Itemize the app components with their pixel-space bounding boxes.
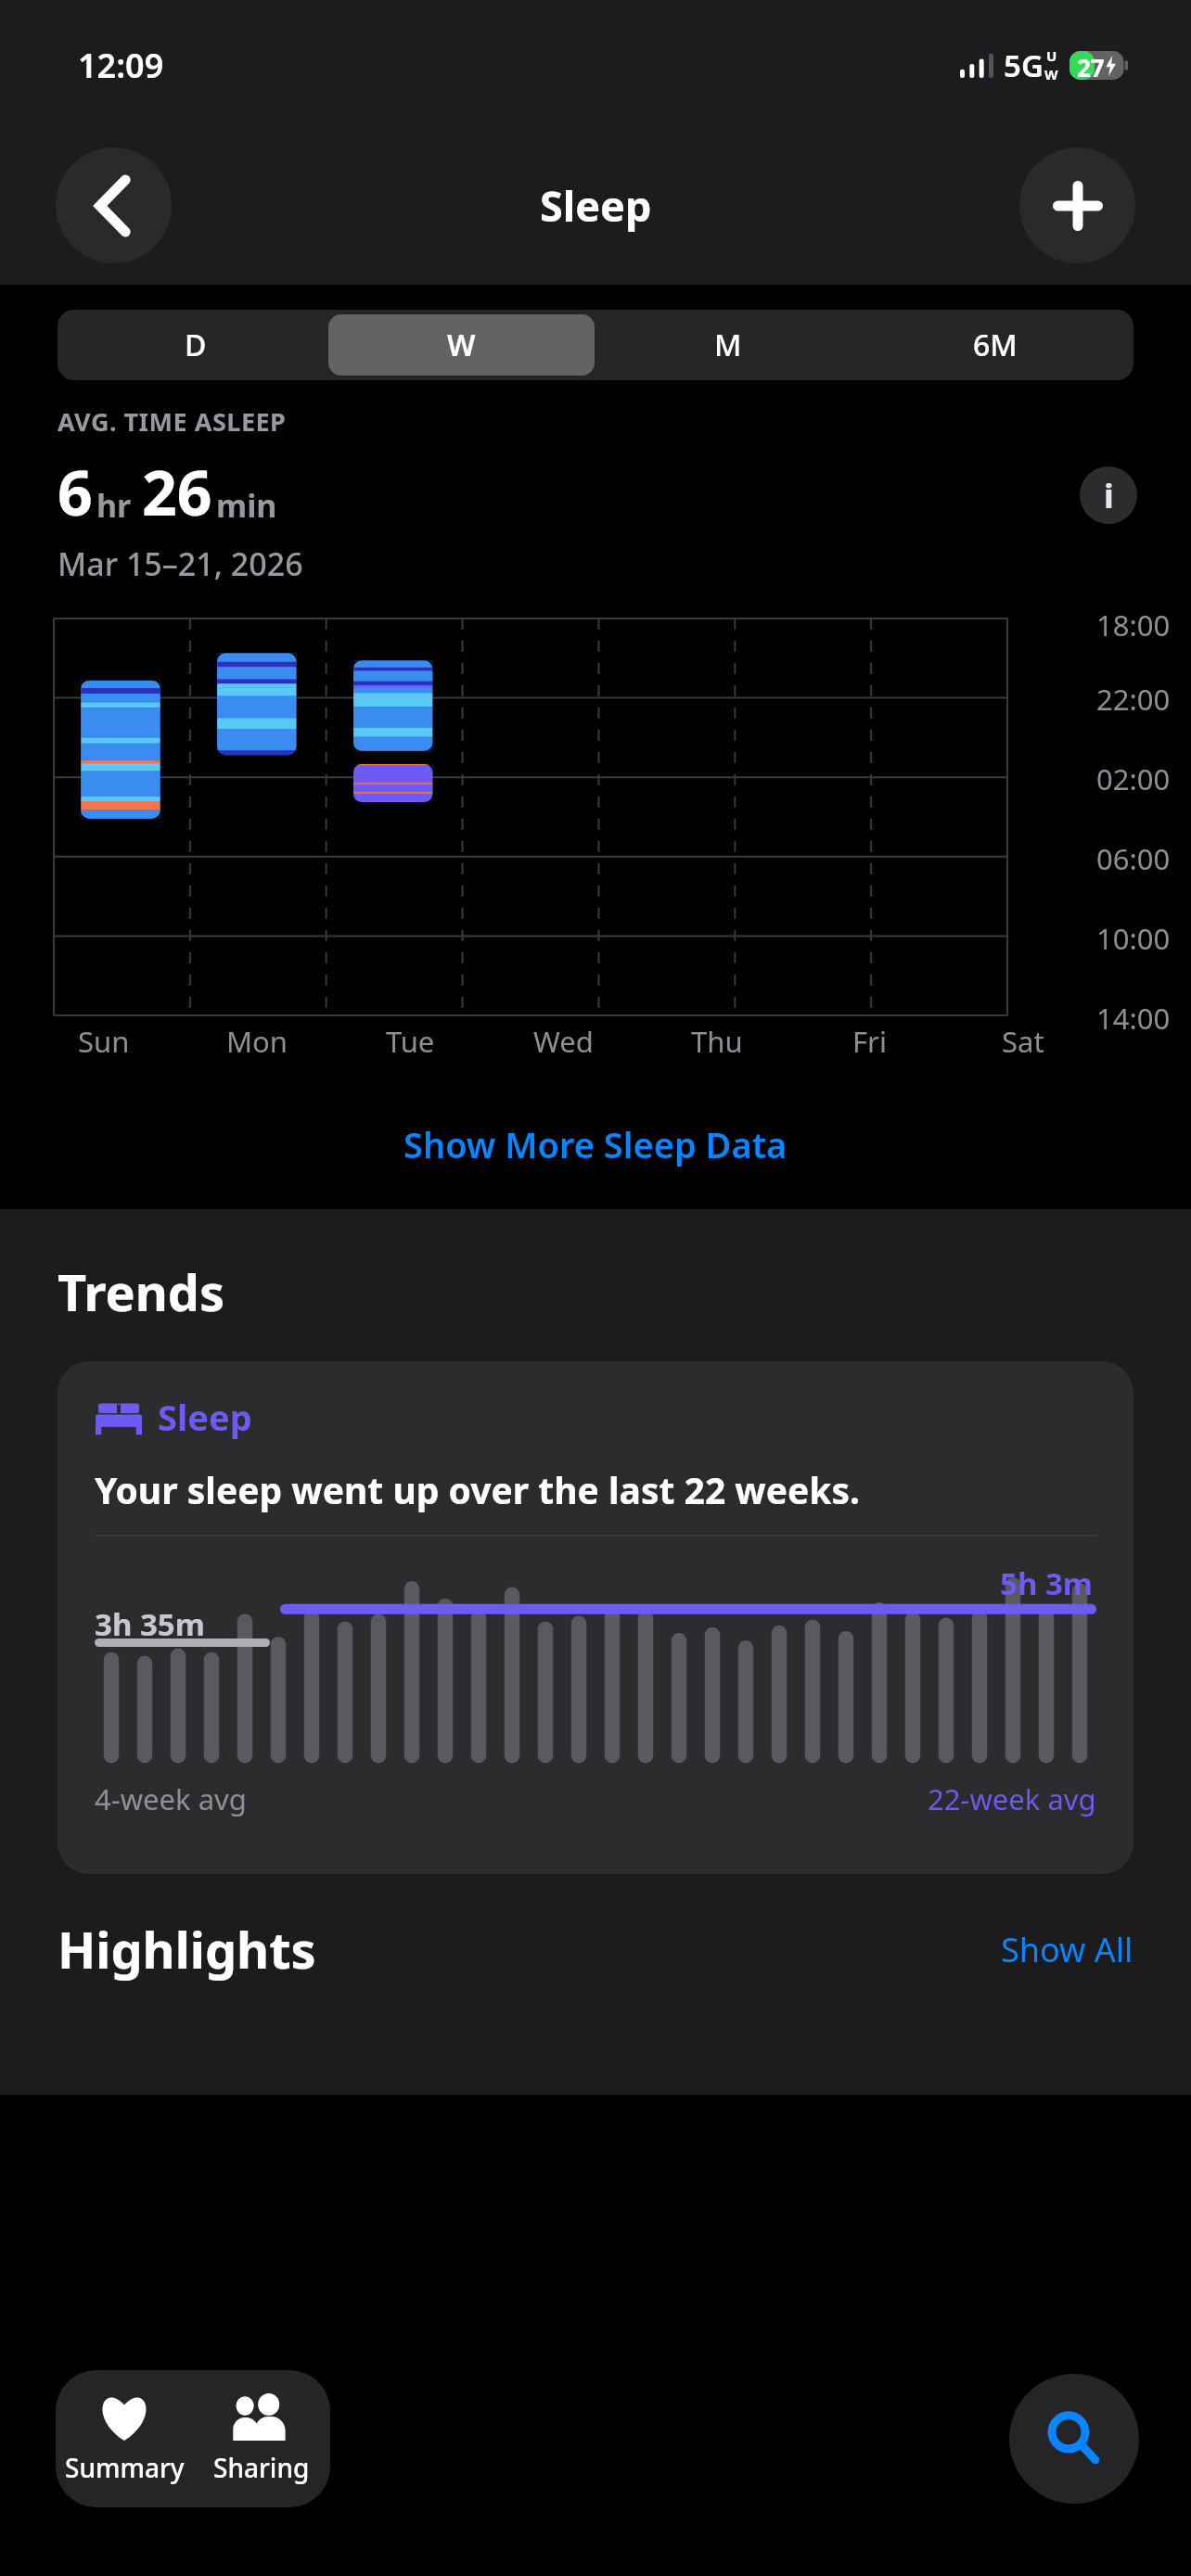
button[interactable]: Sharing — [193, 2370, 330, 2507]
staticText: Tue — [386, 1022, 435, 1061]
button[interactable]: Search — [1009, 2374, 1139, 2504]
staticText: Show More Sleep Data — [403, 1120, 788, 1168]
staticText: Summary — [65, 2450, 185, 2485]
button[interactable]: Sleep — [58, 1361, 1133, 1874]
staticText: Show All — [1001, 1927, 1133, 1972]
button[interactable]: Info — [1080, 466, 1137, 524]
staticText: 22:00 — [1096, 680, 1171, 719]
staticText: 06:00 — [1096, 839, 1171, 878]
staticText: W — [447, 325, 476, 365]
staticText: Mon — [226, 1022, 288, 1061]
button[interactable]: M — [595, 314, 862, 376]
staticText: Sun — [78, 1022, 130, 1061]
staticText: U — [1046, 46, 1057, 65]
staticText: 22-week avg — [928, 1779, 1096, 1818]
staticText: Sat — [1002, 1022, 1044, 1061]
staticText: 4-week avg — [95, 1779, 247, 1818]
staticText: 5G — [1004, 45, 1044, 86]
staticText: Wed — [533, 1022, 594, 1061]
button[interactable]: D — [62, 314, 328, 376]
staticText: 14:00 — [1096, 999, 1171, 1038]
staticText: Sleep — [158, 1393, 252, 1441]
staticText: hr — [96, 484, 132, 527]
button[interactable]: 6M — [862, 314, 1129, 376]
staticText: AVG. TIME ASLEEP — [58, 404, 287, 439]
button[interactable]: Summary — [56, 2370, 193, 2507]
button[interactable]: Back — [56, 147, 172, 263]
staticText: Thu — [691, 1022, 743, 1061]
staticText: Fri — [852, 1022, 887, 1061]
button[interactable]: W — [328, 314, 595, 376]
staticText: Trends — [58, 1257, 225, 1326]
button[interactable]: Show More Sleep Data — [0, 1120, 1191, 1168]
staticText: Highlights — [58, 1915, 316, 1983]
staticText: D — [185, 325, 207, 365]
staticText: Sharing — [213, 2450, 310, 2485]
staticText: i — [1104, 473, 1114, 518]
button[interactable]: Add — [1019, 147, 1135, 263]
staticText: min — [216, 484, 277, 527]
staticText: 12:09 — [78, 43, 164, 88]
staticText: 6 — [58, 450, 93, 533]
staticText: 26 — [142, 450, 212, 533]
staticText: Mar 15–21, 2026 — [58, 542, 303, 585]
staticText: M — [714, 325, 742, 365]
staticText: 27 — [1077, 51, 1105, 80]
staticText: Your sleep went up over the last 22 week… — [95, 1465, 861, 1514]
staticText: 5h 3m — [1000, 1562, 1093, 1604]
button[interactable]: Show All — [1001, 1927, 1133, 1972]
staticText: W — [1044, 65, 1058, 83]
staticText: 02:00 — [1096, 759, 1171, 798]
staticText: 18:00 — [1096, 606, 1171, 639]
staticText: Sleep — [540, 177, 652, 234]
staticText: 6M — [973, 325, 1018, 365]
staticText: 10:00 — [1096, 919, 1171, 958]
staticText: 3h 35m — [95, 1603, 205, 1645]
